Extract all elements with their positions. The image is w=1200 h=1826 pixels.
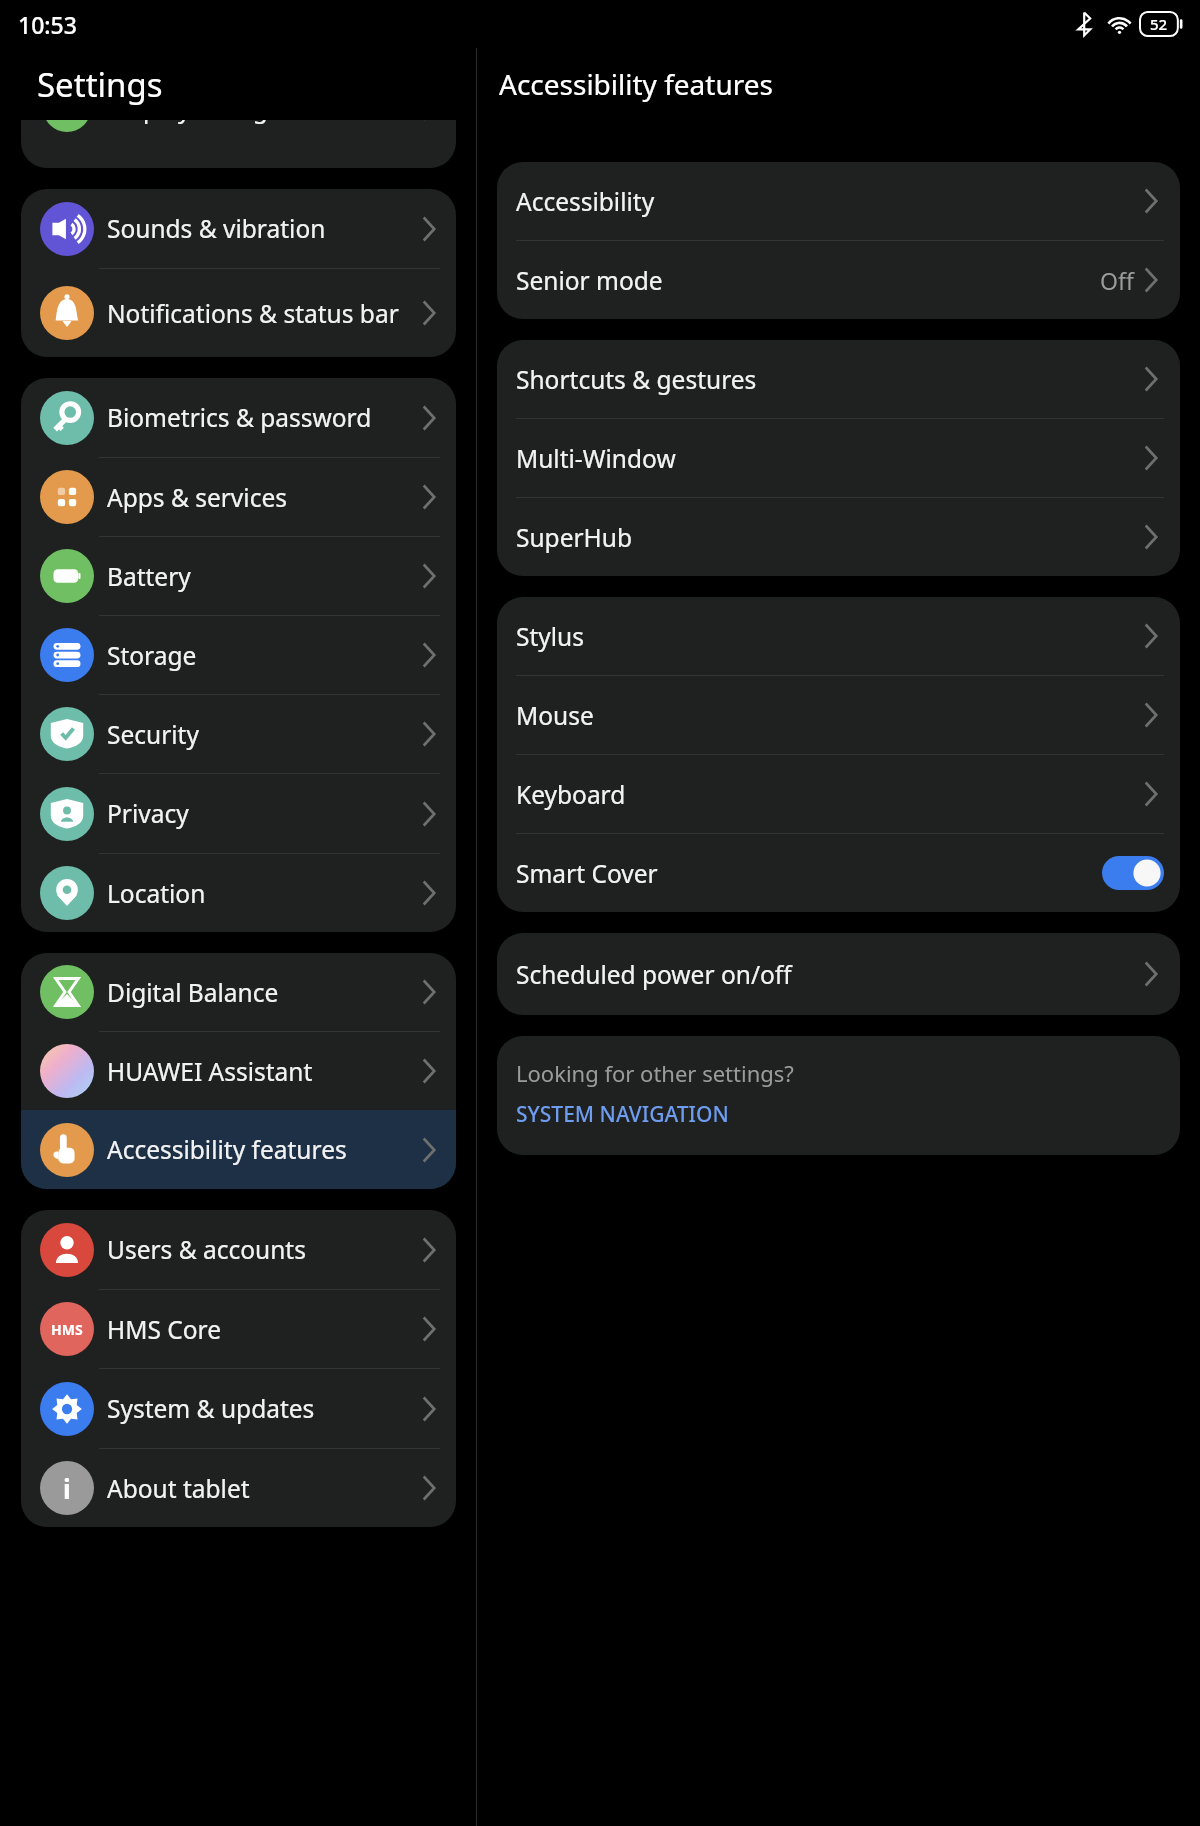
- button[interactable]: Keyboard: [497, 755, 1180, 833]
- button[interactable]: System & updates: [21, 1369, 456, 1448]
- button[interactable]: Shortcuts & gestures: [497, 340, 1180, 418]
- staticText: SYSTEM NAVIGATION: [516, 1100, 729, 1129]
- button[interactable]: Stylus: [497, 597, 1180, 675]
- staticText: SuperHub: [516, 521, 1138, 554]
- button[interactable]: Smart Cover toggle: [1102, 856, 1164, 890]
- button[interactable]: Privacy: [21, 774, 456, 853]
- staticText: System & updates: [107, 1392, 410, 1425]
- staticText: Battery: [107, 560, 410, 593]
- button[interactable]: Storage: [21, 616, 456, 694]
- staticText: Digital Balance: [107, 976, 410, 1009]
- staticText: Privacy: [107, 797, 410, 830]
- button[interactable]: Security: [21, 695, 456, 773]
- button[interactable]: HMS: [21, 1290, 456, 1368]
- staticText: Storage: [107, 639, 410, 672]
- staticText: HMS Core: [107, 1313, 410, 1346]
- staticText: Display & brightness: [107, 120, 416, 125]
- staticText: Mouse: [516, 699, 1138, 732]
- staticText: Multi-Window: [516, 442, 1138, 475]
- staticText: Accessibility features: [499, 65, 773, 103]
- button[interactable]: i: [21, 1449, 456, 1527]
- staticText: 52: [1150, 14, 1168, 34]
- staticText: Stylus: [516, 620, 1138, 653]
- staticText: Sounds & vibration: [107, 212, 410, 245]
- button[interactable]: Smart Cover: [497, 834, 1180, 912]
- staticText: Security: [107, 718, 410, 751]
- button[interactable]: Notifications & status bar: [21, 269, 456, 357]
- button[interactable]: Apps & services: [21, 458, 456, 536]
- staticText: Accessibility features: [107, 1133, 410, 1166]
- button[interactable]: Multi-Window: [497, 419, 1180, 497]
- button[interactable]: Display & brightness: [21, 120, 456, 168]
- staticText: Notifications & status bar: [107, 297, 410, 330]
- button[interactable]: Location: [21, 854, 456, 932]
- button[interactable]: Accessibility features: [21, 1110, 456, 1189]
- staticText: Scheduled power on/off: [516, 958, 1138, 991]
- staticText: Looking for other settings?: [516, 1058, 794, 1088]
- button[interactable]: SuperHub: [497, 498, 1180, 576]
- staticText: Smart Cover: [516, 857, 1102, 890]
- staticText: 10:53: [18, 9, 77, 40]
- button[interactable]: Scheduled power on/off: [497, 933, 1180, 1015]
- staticText: Shortcuts & gestures: [516, 363, 1138, 396]
- button[interactable]: SYSTEM NAVIGATION: [516, 1100, 729, 1129]
- button[interactable]: Senior mode: [497, 241, 1180, 319]
- button[interactable]: HUAWEI Assistant: [21, 1032, 456, 1110]
- staticText: HUAWEI Assistant: [107, 1055, 410, 1088]
- button[interactable]: Accessibility: [497, 162, 1180, 240]
- button[interactable]: Mouse: [497, 676, 1180, 754]
- staticText: Biometrics & password: [107, 401, 410, 434]
- button[interactable]: Battery: [21, 537, 456, 615]
- staticText: Users & accounts: [107, 1233, 410, 1266]
- button[interactable]: Users & accounts: [21, 1210, 456, 1289]
- button[interactable]: Biometrics & password: [21, 378, 456, 457]
- staticText: Settings: [37, 62, 163, 107]
- staticText: HMS: [51, 1320, 83, 1339]
- staticText: Off: [1100, 265, 1134, 296]
- button[interactable]: Digital Balance: [21, 953, 456, 1031]
- staticText: Location: [107, 877, 410, 910]
- staticText: Senior mode: [516, 264, 1100, 297]
- button[interactable]: Sounds & vibration: [21, 189, 456, 268]
- staticText: Accessibility: [516, 185, 1138, 218]
- staticText: Keyboard: [516, 778, 1138, 811]
- staticText: About tablet: [107, 1472, 410, 1505]
- staticText: Apps & services: [107, 481, 410, 514]
- staticText: i: [63, 1471, 71, 1506]
